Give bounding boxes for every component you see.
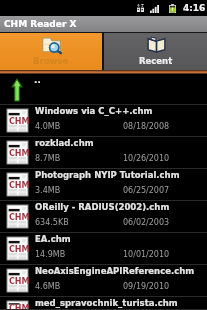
staticText: Photograph NYIP Tutorial.chm (35, 170, 180, 180)
button[interactable]: Go to parent folder (0, 74, 207, 105)
staticText: CHM (9, 149, 30, 158)
staticText: CHM (9, 277, 30, 286)
button[interactable]: CHM (0, 105, 207, 137)
staticText: 06/02/2003 (123, 218, 170, 227)
staticText: CHM (9, 304, 30, 310)
staticText: .. (34, 75, 41, 85)
staticText: 14.9MB (35, 250, 66, 259)
staticText: 10/01/2010 (123, 250, 170, 259)
staticText: 08/18/2008 (123, 122, 170, 131)
button[interactable]: CHM (0, 137, 207, 169)
button[interactable]: Browse (0, 32, 102, 70)
button[interactable]: CHM (0, 169, 207, 201)
staticText: 09/19/2010 (123, 282, 170, 291)
staticText: CHM (9, 213, 30, 222)
staticText: Windows via C_C++.chm (35, 106, 153, 116)
staticText: 4.0MB (35, 122, 61, 131)
button[interactable]: CHM (0, 201, 207, 233)
staticText: 10/26/2010 (123, 154, 170, 163)
staticText: CHM (9, 117, 30, 126)
staticText: Recent (139, 56, 173, 66)
button[interactable]: CHM (0, 265, 207, 297)
staticText: 634.5KB (35, 218, 69, 227)
staticText: OReilly - RADIUS(2002).chm (35, 202, 170, 212)
staticText: EA.chm (35, 234, 71, 244)
staticText: Browse (33, 56, 69, 66)
staticText: 8.7MB (35, 154, 61, 163)
staticText: CHM (9, 245, 30, 254)
button[interactable]: Recent (104, 32, 207, 70)
staticText: 4:16 (183, 3, 206, 13)
staticText: CHM (9, 181, 30, 190)
staticText: 3.4MB (35, 186, 61, 195)
staticText: rozklad.chm (35, 138, 94, 148)
staticText: 4.6MB (35, 282, 61, 291)
button[interactable]: CHM (0, 297, 207, 310)
staticText: NeoAxisEngineAPIReference.chm (35, 266, 195, 276)
staticText: med_spravochnik_turista.chm (35, 298, 178, 308)
staticText: CHM Reader X (4, 19, 77, 29)
button[interactable]: CHM (0, 233, 207, 265)
staticText: 06/25/2007 (123, 186, 170, 195)
